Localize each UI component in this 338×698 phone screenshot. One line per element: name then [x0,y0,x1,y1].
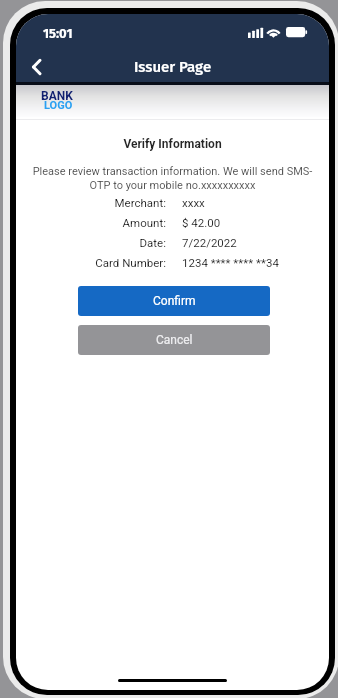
staticText: Issuer Page [16,58,329,76]
staticText: 7/22/2022 [182,236,237,249]
staticText: $ 42.00 [182,216,221,229]
staticText: 1234 **** **** **34 [182,256,279,269]
staticText: Confirm [153,294,196,308]
button[interactable]: Cancel [78,325,270,355]
staticText: Please review transaction information. W… [30,165,315,192]
staticText: Merchant: [16,196,166,209]
staticText: Date: [16,236,166,249]
staticText: 15:01 [43,26,73,42]
staticText: BANK [41,89,73,103]
staticText: Amount: [16,216,166,229]
staticText: Card Number: [16,256,166,269]
staticText: xxxx [182,196,205,209]
staticText: LOGO [44,99,73,112]
staticText: Cancel [156,333,193,347]
button[interactable]: Confirm [78,286,270,316]
staticText: Verify Information [16,137,329,151]
button[interactable]: Back [21,52,51,82]
